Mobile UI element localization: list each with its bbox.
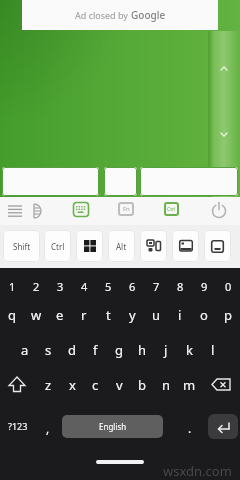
staticText: i — [178, 306, 182, 324]
staticText: v — [116, 376, 123, 394]
button[interactable] — [104, 167, 137, 196]
button[interactable]: English — [62, 415, 163, 438]
staticText: Alt — [116, 241, 127, 252]
staticText: l — [211, 341, 215, 359]
staticText: wsxdn.com — [163, 462, 232, 480]
staticText: m — [183, 376, 196, 394]
staticText: b — [138, 376, 146, 394]
button[interactable]: t — [96, 301, 120, 329]
button[interactable]: r — [72, 301, 96, 329]
button[interactable] — [76, 230, 103, 262]
button[interactable]: h — [130, 336, 154, 364]
staticText: 8 — [177, 279, 184, 294]
button[interactable]: Ctrl — [44, 230, 71, 262]
button[interactable]: i — [168, 301, 192, 329]
staticText: w — [31, 306, 42, 324]
staticText: y — [129, 306, 136, 324]
button[interactable]: w — [24, 301, 48, 329]
button[interactable]: n — [154, 371, 178, 399]
button[interactable]: g — [107, 336, 131, 364]
button[interactable]: 0 — [216, 272, 240, 300]
button[interactable]: l — [201, 336, 225, 364]
button[interactable]: , — [36, 414, 60, 442]
staticText: English — [99, 421, 127, 432]
button[interactable]: Ctrl — [164, 202, 179, 216]
button[interactable]: 8 — [168, 272, 192, 300]
button[interactable]: Shift — [3, 230, 40, 262]
staticText: x — [69, 376, 76, 394]
button[interactable] — [210, 200, 228, 222]
staticText: 5 — [105, 279, 112, 294]
staticText: Ad closed by — [75, 9, 131, 21]
button[interactable]: q — [0, 301, 24, 329]
staticText: c — [92, 376, 99, 394]
staticText: o — [200, 306, 208, 324]
button[interactable]: Ad closed by — [22, 0, 218, 30]
button[interactable]: 6 — [120, 272, 144, 300]
button[interactable]: 2 — [24, 272, 48, 300]
staticText: 9 — [201, 279, 208, 294]
staticText: z — [45, 376, 52, 394]
button[interactable]: x — [60, 371, 84, 399]
staticText: e — [56, 306, 64, 324]
button[interactable]: 7 — [144, 272, 168, 300]
button[interactable]: s — [36, 336, 60, 364]
button[interactable]: d — [60, 336, 84, 364]
button[interactable] — [73, 202, 89, 217]
button[interactable] — [4, 372, 30, 398]
button[interactable]: v — [107, 371, 131, 399]
button[interactable]: y — [120, 301, 144, 329]
button[interactable] — [2, 167, 99, 196]
button[interactable]: c — [83, 371, 107, 399]
staticText: Ctrl — [167, 206, 176, 213]
button[interactable]: 5 — [96, 272, 120, 300]
staticText: f — [93, 341, 98, 359]
button[interactable]: 4 — [72, 272, 96, 300]
staticText: n — [162, 376, 171, 394]
staticText: 3 — [57, 279, 64, 294]
staticText: 7 — [153, 279, 160, 294]
button[interactable]: 1 — [0, 272, 24, 300]
staticText: 4 — [81, 279, 88, 294]
button[interactable]: 3 — [48, 272, 72, 300]
button[interactable]: j — [154, 336, 178, 364]
staticText: Fn — [123, 205, 130, 213]
button[interactable] — [6, 199, 26, 223]
button[interactable] — [140, 167, 238, 196]
staticText: s — [45, 341, 52, 359]
button[interactable]: o — [192, 301, 216, 329]
button[interactable]: f — [83, 336, 107, 364]
button[interactable]: u — [144, 301, 168, 329]
button[interactable] — [208, 372, 236, 398]
button[interactable]: Alt — [108, 230, 135, 262]
staticText: Ctrl — [51, 241, 65, 252]
staticText: 1 — [9, 279, 16, 294]
staticText: h — [138, 341, 147, 359]
staticText: j — [164, 341, 168, 359]
button[interactable]: k — [177, 336, 201, 364]
button[interactable]: z — [36, 371, 60, 399]
button[interactable] — [204, 230, 231, 262]
button[interactable]: b — [130, 371, 154, 399]
button[interactable] — [208, 414, 238, 439]
staticText: , — [46, 420, 50, 436]
button[interactable]: 9 — [192, 272, 216, 300]
button[interactable]: Fn — [118, 202, 134, 216]
staticText: 0 — [225, 279, 232, 294]
button[interactable] — [172, 230, 199, 262]
staticText: r — [81, 306, 87, 324]
button[interactable]: m — [177, 371, 201, 399]
staticText: u — [152, 306, 161, 324]
staticText: Shift — [13, 241, 31, 252]
staticText: d — [68, 341, 76, 359]
staticText: Google — [131, 8, 166, 22]
button[interactable]: a — [13, 336, 37, 364]
button[interactable] — [26, 199, 44, 223]
button[interactable] — [140, 230, 167, 262]
button[interactable]: e — [48, 301, 72, 329]
button[interactable]: ?123 — [2, 412, 34, 440]
staticText: 6 — [129, 279, 136, 294]
button[interactable]: . — [178, 414, 202, 442]
button[interactable]: p — [216, 301, 240, 329]
staticText: a — [21, 341, 29, 359]
